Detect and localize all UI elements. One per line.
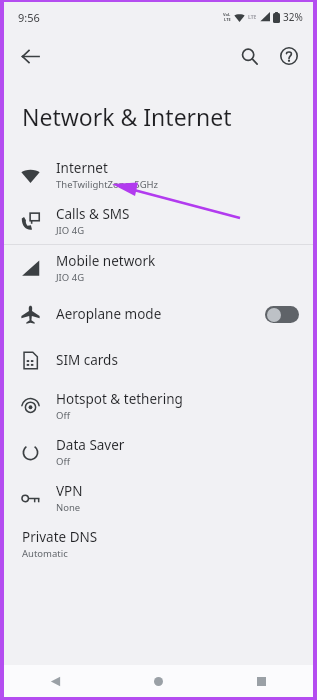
staticText: Aeroplane mode [56,305,162,323]
staticText: JIO 4G [56,271,85,284]
staticText: Mobile network [56,252,156,270]
button[interactable]: Mobile network [4,245,313,291]
button[interactable]: Hotspot & tethering [4,383,313,429]
staticText: 9:56 [18,10,40,25]
staticText: Automatic [22,547,68,560]
staticText: Off [56,409,70,422]
staticText: Off [56,455,70,468]
staticText: Private DNS [22,528,98,546]
button[interactable]: Back [10,36,50,76]
button[interactable]: Private DNS [4,521,313,567]
staticText: Calls & SMS [56,205,130,223]
button[interactable]: Calls & SMS [4,198,313,244]
button[interactable]: VPN [4,475,313,521]
button[interactable]: Recent apps [210,665,313,697]
staticText: JIO 4G [56,224,85,237]
staticText: Data Saver [56,436,125,454]
button[interactable]: Home [107,665,210,697]
staticText: TheTwilightZone_5GHz [56,178,159,191]
button[interactable]: Help [269,36,309,76]
staticText: 32% [283,10,303,24]
button[interactable]: Data Saver [4,429,313,475]
button[interactable]: Aeroplane mode toggle [265,306,299,323]
button[interactable]: Search [229,36,269,76]
staticText: VPN [56,482,83,500]
button[interactable]: Aeroplane mode [4,291,313,337]
staticText: None [56,501,81,514]
staticText: SIM cards [56,351,118,369]
button[interactable]: SIM cards [4,337,313,383]
staticText: Internet [56,159,108,177]
staticText: LTE [224,17,231,22]
staticText: Network & Internet [22,101,232,132]
staticText: VoL [223,12,231,17]
staticText: Hotspot & tethering [56,390,183,408]
button[interactable]: Back [4,665,107,697]
staticText: LTE [248,14,257,21]
button[interactable]: Internet [4,152,313,198]
